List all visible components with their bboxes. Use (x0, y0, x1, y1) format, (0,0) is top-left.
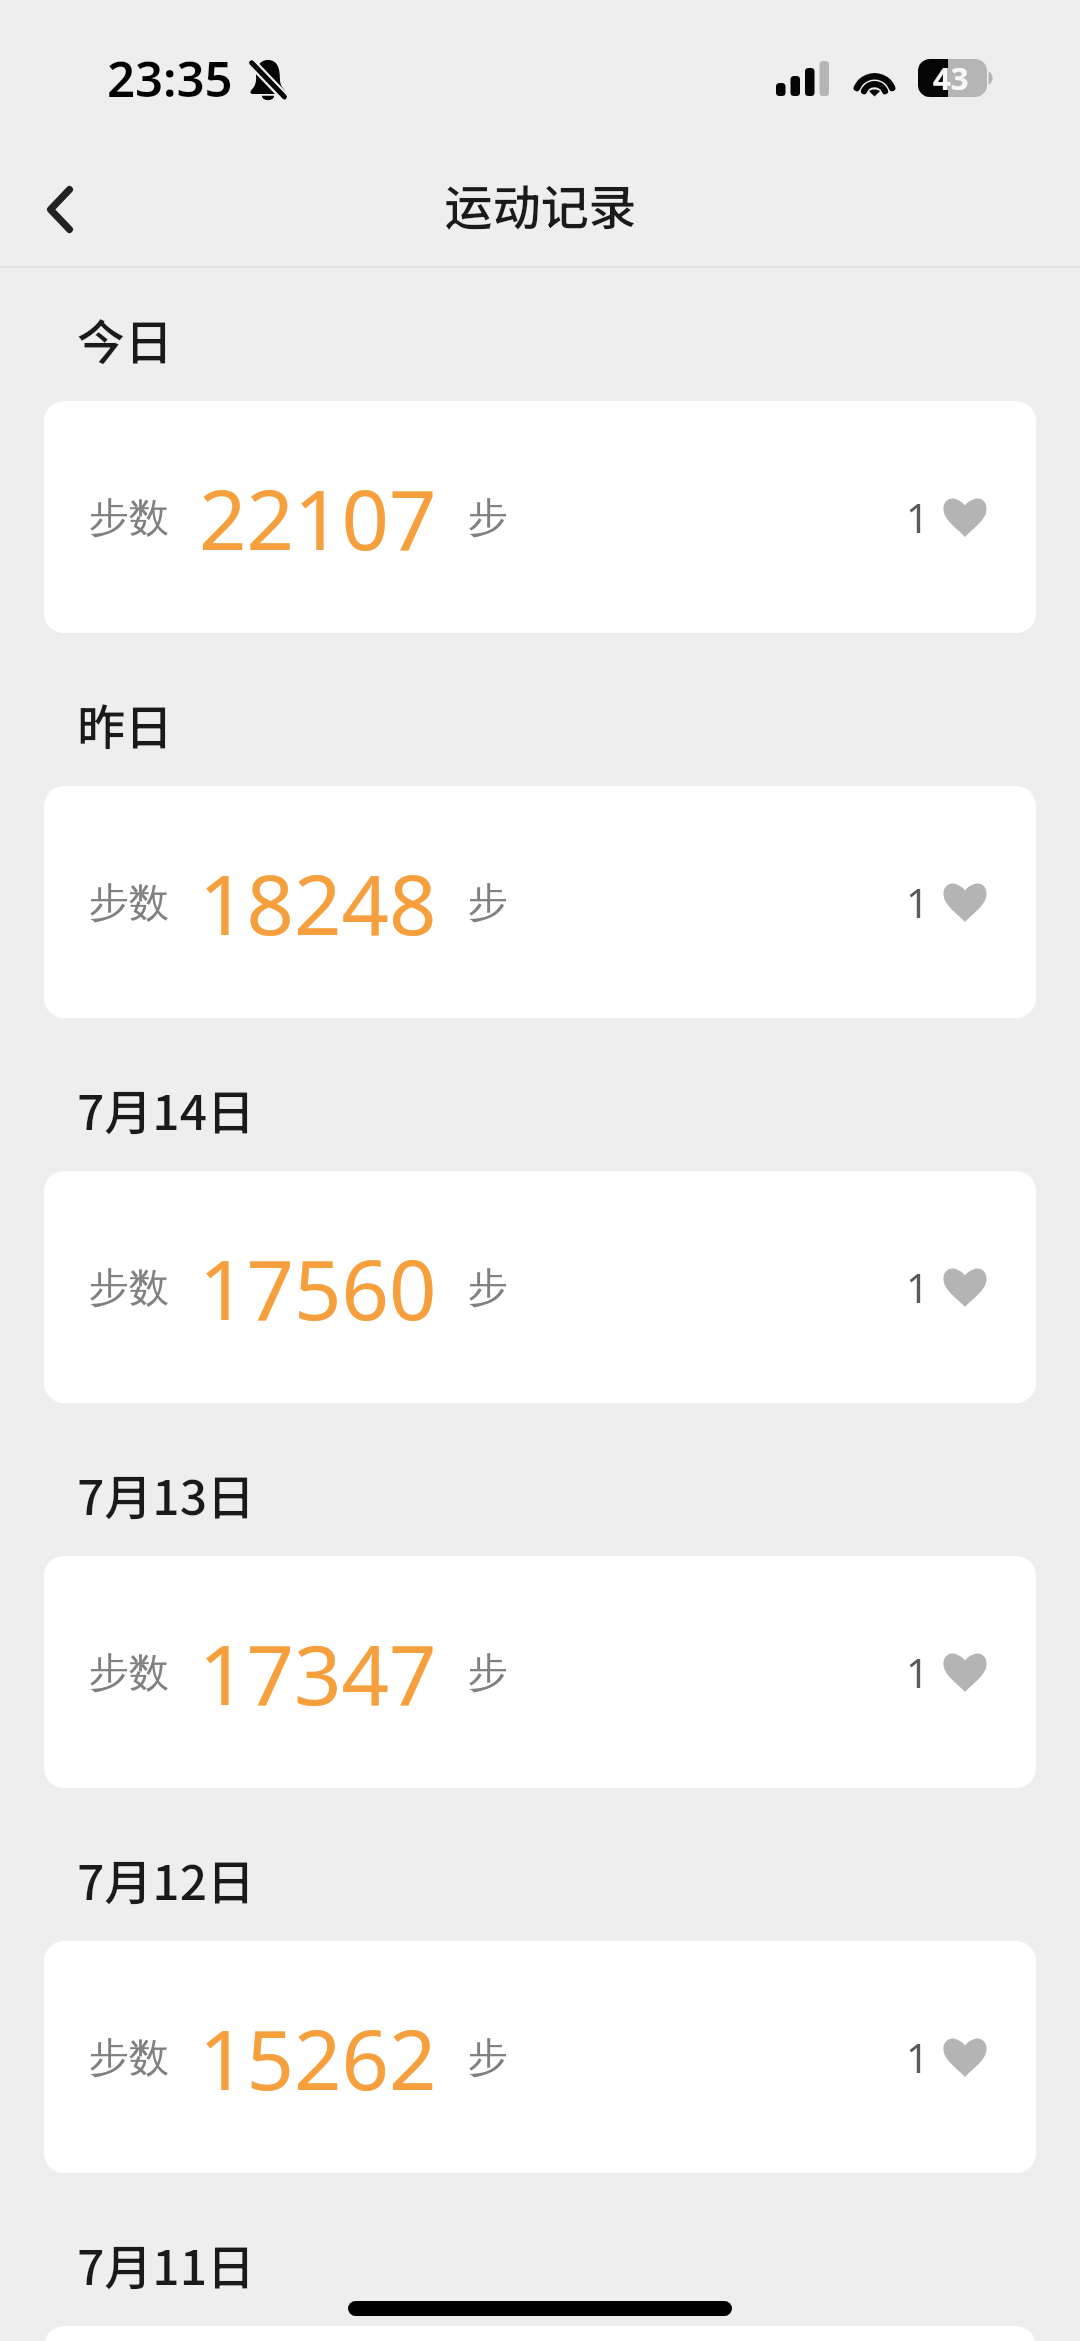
staticText: 步 (468, 877, 508, 927)
staticText: 今日 (77, 304, 174, 374)
button[interactable]: 步数 (44, 786, 1036, 1018)
staticText: 17347 (199, 1616, 437, 1729)
button[interactable]: 步数 (44, 1941, 1036, 2173)
staticText: 步数 (89, 492, 169, 542)
staticText: 1 (906, 1260, 929, 1314)
staticText: 步 (468, 1647, 508, 1697)
staticText: 7月14日 (77, 1074, 256, 1144)
staticText: 步数 (89, 1262, 169, 1312)
button[interactable]: Like (896, 786, 987, 1018)
button[interactable]: Like (896, 401, 987, 633)
staticText: 43 (933, 57, 969, 99)
staticText: 步数 (89, 1647, 169, 1697)
staticText: 22107 (199, 461, 437, 574)
button[interactable]: Like (896, 1556, 987, 1788)
button[interactable]: Like (896, 1941, 987, 2173)
button[interactable]: 步数 (44, 1556, 1036, 1788)
staticText: 7月12日 (77, 1844, 256, 1914)
staticText: 步数 (89, 2032, 169, 2082)
staticText: 1 (906, 490, 929, 544)
staticText: 步数 (89, 877, 169, 927)
staticText: 昨日 (77, 689, 174, 759)
staticText: 步 (468, 492, 508, 542)
staticText: 7月13日 (77, 1459, 256, 1529)
staticText: 运动记录 (444, 169, 637, 239)
staticText: 17560 (199, 1231, 437, 1344)
button[interactable]: 步数 (44, 1171, 1036, 1403)
button[interactable]: 步数 (44, 401, 1036, 633)
staticText: 1 (906, 875, 929, 929)
button[interactable]: Back (22, 169, 94, 249)
staticText: 1 (906, 1645, 929, 1699)
staticText: 步 (468, 1262, 508, 1312)
staticText: 18248 (199, 846, 437, 959)
button[interactable]: Like (896, 1171, 987, 1403)
staticText: 1 (906, 2030, 929, 2084)
staticText: 23:35 (107, 45, 233, 112)
staticText: 7月11日 (77, 2229, 256, 2299)
staticText: 15262 (199, 2001, 437, 2114)
staticText: 步 (468, 2032, 508, 2082)
